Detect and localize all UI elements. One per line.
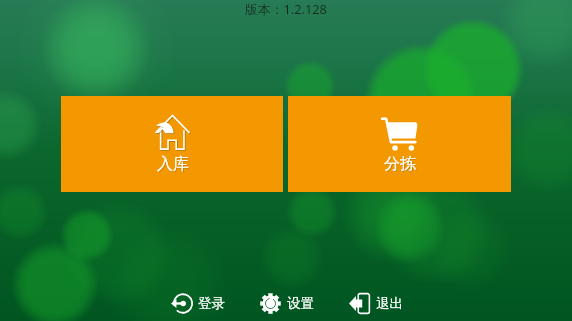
button[interactable]: 分拣 (288, 96, 511, 192)
staticText: 分拣 (384, 154, 416, 174)
button[interactable]: 入库 (61, 96, 283, 192)
button[interactable]: 退出 (347, 290, 405, 317)
staticText: 登录 (198, 295, 225, 312)
staticText: 设置 (287, 295, 314, 312)
button[interactable]: 设置 (258, 290, 316, 317)
button[interactable]: 登录 (169, 290, 227, 317)
staticText: 退出 (376, 295, 403, 312)
staticText: 版本：1.2.128 (245, 0, 327, 17)
staticText: 分拣 (385, 155, 417, 175)
staticText: 入库 (157, 154, 189, 174)
staticText: 入库 (158, 155, 190, 175)
